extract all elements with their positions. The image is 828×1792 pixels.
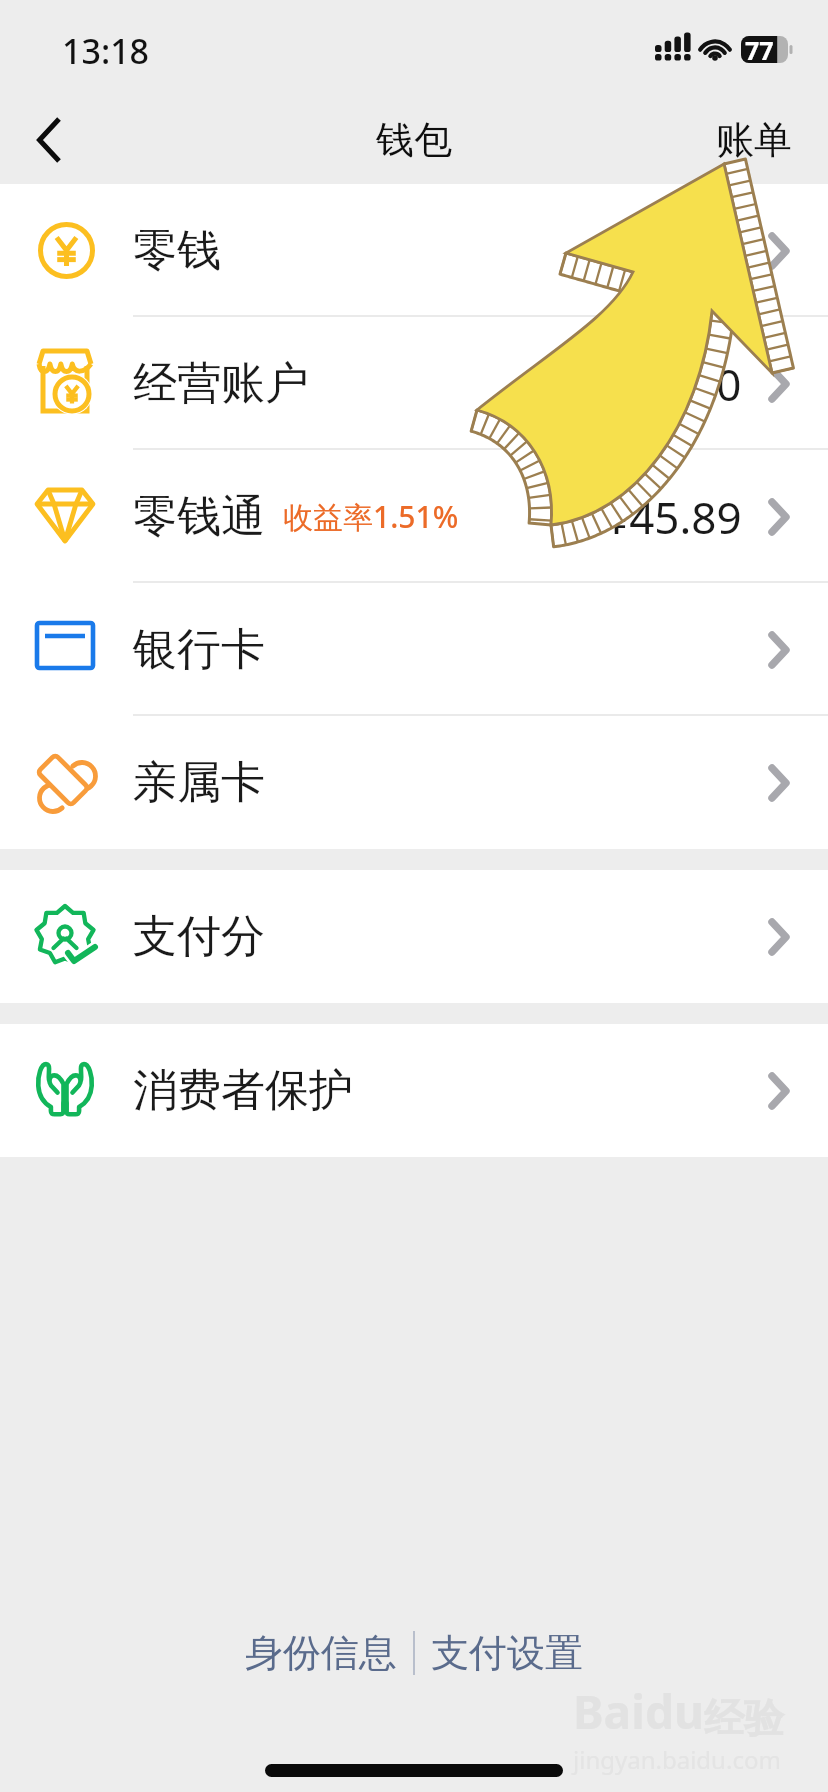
staticText: 13:18 [62, 28, 150, 74]
button[interactable]: 账单 [680, 96, 828, 184]
staticText: 银行卡 [133, 622, 265, 677]
staticText: 经营账户 [133, 356, 309, 411]
staticText: 消费者保护 [133, 1063, 353, 1118]
button[interactable]: 经营账户 [0, 317, 828, 450]
staticText: 支付设置 [431, 1629, 583, 1677]
staticText: ¥45.89 [604, 487, 742, 547]
button[interactable]: 零钱 [0, 184, 828, 317]
button[interactable]: 身份信息 [229, 1619, 413, 1687]
staticText: 亲属卡 [133, 755, 265, 810]
staticText: 身份信息 [245, 1629, 397, 1677]
staticText: 账单 [716, 116, 792, 164]
staticText: 零钱 [133, 223, 221, 278]
button[interactable]: 支付分 [0, 870, 828, 1003]
staticText: ¥0.00 [629, 354, 742, 414]
button[interactable]: 零钱通 [0, 450, 828, 583]
staticText: 收益率1.51% [283, 496, 459, 537]
staticText: 经验 [704, 1693, 784, 1743]
staticText: 钱包 [376, 116, 452, 164]
staticText: jingyan.baidu.com [573, 1743, 781, 1776]
staticText: 支付分 [133, 909, 265, 964]
button[interactable]: 亲属卡 [0, 716, 828, 849]
staticText: Baidu [573, 1680, 704, 1743]
staticText: 77 [745, 33, 774, 66]
button[interactable]: Back [0, 96, 96, 184]
button[interactable]: 银行卡 [0, 583, 828, 716]
button[interactable]: 消费者保护 [0, 1024, 828, 1157]
staticText: 零钱通 [133, 489, 265, 544]
button[interactable]: 支付设置 [415, 1619, 599, 1687]
